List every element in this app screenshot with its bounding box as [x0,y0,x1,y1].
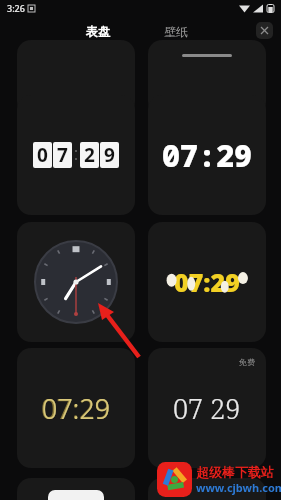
button[interactable] [17,222,135,342]
staticText: 07:29 [41,390,111,427]
staticText: 3:26 [7,2,25,14]
staticText: 07:29 [162,135,252,176]
button[interactable]: 免费 [148,348,266,468]
button[interactable] [148,478,266,500]
staticText: 07 29 [173,390,241,427]
staticText: 7 [57,142,68,168]
button[interactable]: 壁纸 [158,22,194,41]
staticText: 超级棒下载站 [196,464,274,480]
button[interactable]: 07:29 [148,95,266,215]
staticText: 免费 [239,357,255,367]
staticText: 9 [104,142,115,168]
button[interactable]: Close [256,22,273,39]
staticText: 07:29 [174,265,240,299]
button[interactable]: 表盘 [80,22,116,47]
button[interactable]: 07:29 [148,222,266,342]
staticText: 0 [37,142,48,168]
staticText: 表盘 [86,24,110,39]
staticText: www.cjbwh.com [196,480,281,495]
staticText: 07:29 [42,390,111,427]
button[interactable]: 07:29 [17,348,135,468]
staticText: 2 [84,142,95,168]
button[interactable]: 0 [17,95,135,215]
staticText: 壁纸 [164,24,188,39]
button[interactable] [148,40,266,115]
button[interactable] [17,478,135,500]
